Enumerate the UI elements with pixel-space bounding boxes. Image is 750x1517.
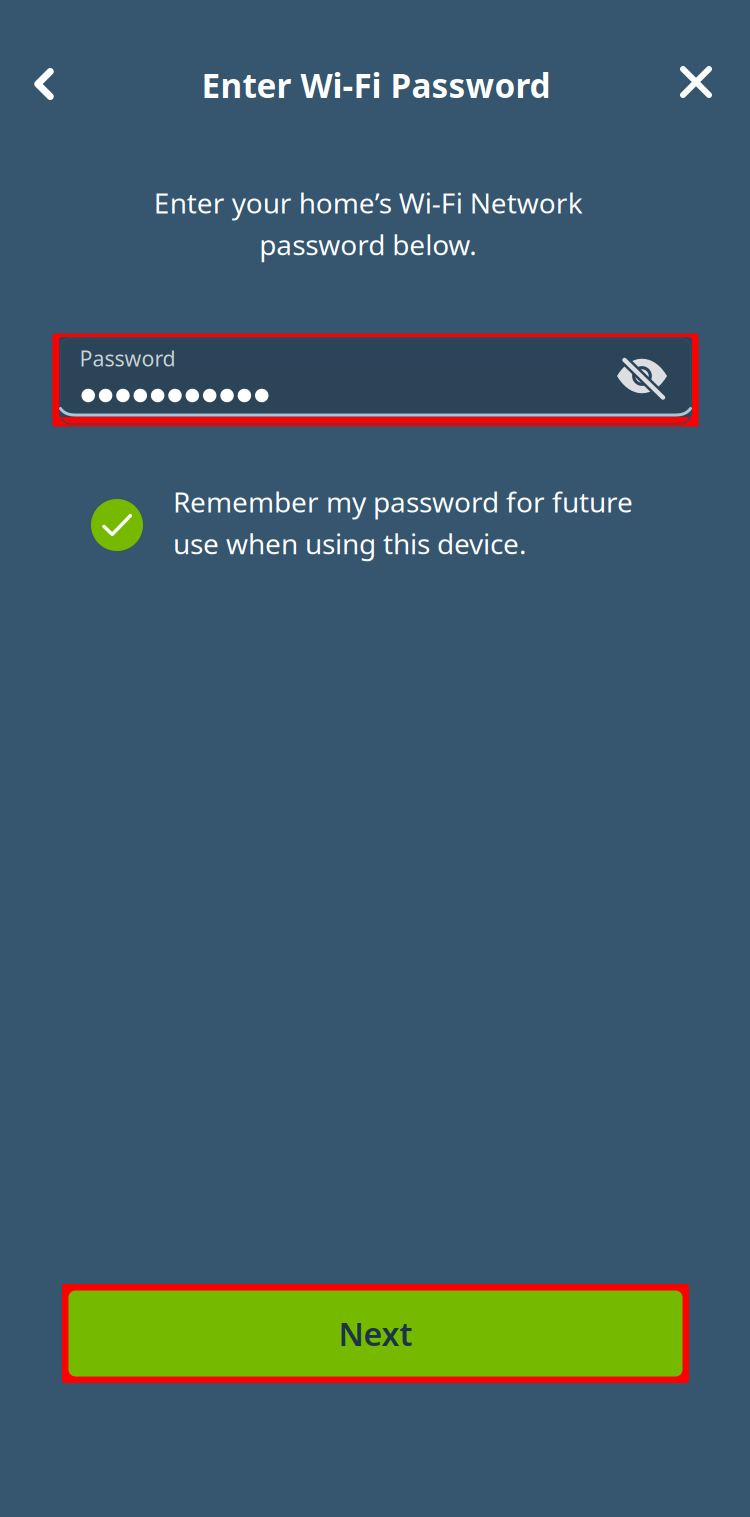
- staticText: Next: [338, 1312, 412, 1355]
- button[interactable]: Next: [62, 1284, 689, 1383]
- staticText: Enter Wi-Fi Password: [201, 63, 550, 107]
- button[interactable]: Back: [0, 38, 90, 130]
- button[interactable]: Remember my password for future use when…: [91, 483, 664, 569]
- button[interactable]: Password: [52, 333, 698, 426]
- staticText: Password: [79, 344, 175, 372]
- staticText: Enter your home’s Wi-Fi Network password…: [153, 184, 582, 263]
- button[interactable]: Show password: [609, 346, 675, 412]
- button[interactable]: Close: [650, 36, 742, 128]
- staticText: Remember my password for future use when…: [173, 483, 633, 562]
